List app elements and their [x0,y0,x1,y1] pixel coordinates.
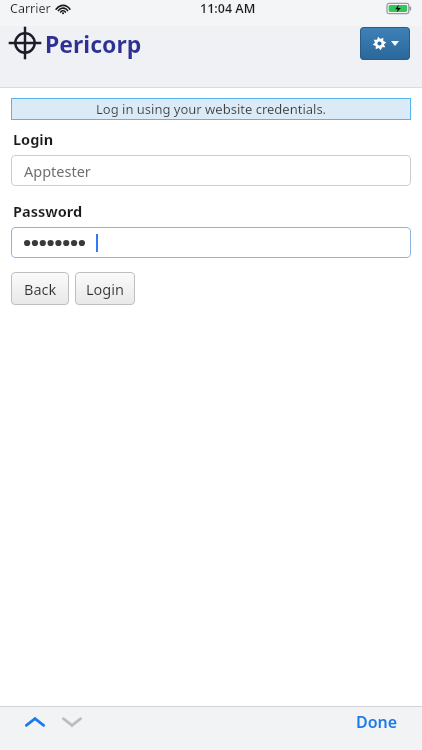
staticText: Log in using your website credentials. [96,100,327,118]
staticText: Pericorp [45,28,142,59]
staticText: 11:04 AM [200,0,256,17]
button[interactable]: Settings [360,27,410,60]
button[interactable]: Previous field [20,707,50,737]
staticText: Apptester [24,161,91,181]
staticText: Done [356,711,398,733]
button[interactable] [11,227,411,258]
button[interactable]: Back [11,272,69,305]
button[interactable]: Done [352,707,402,737]
staticText: Login [13,129,54,149]
button[interactable]: Login [75,272,135,305]
button[interactable]: Pericorp [8,26,142,60]
staticText: Carrier [10,0,51,17]
staticText: Password [13,201,83,221]
staticText: Back [24,279,57,299]
button[interactable]: Next field [57,707,87,737]
button[interactable]: Apptester [11,155,411,186]
staticText: Login [86,279,124,299]
